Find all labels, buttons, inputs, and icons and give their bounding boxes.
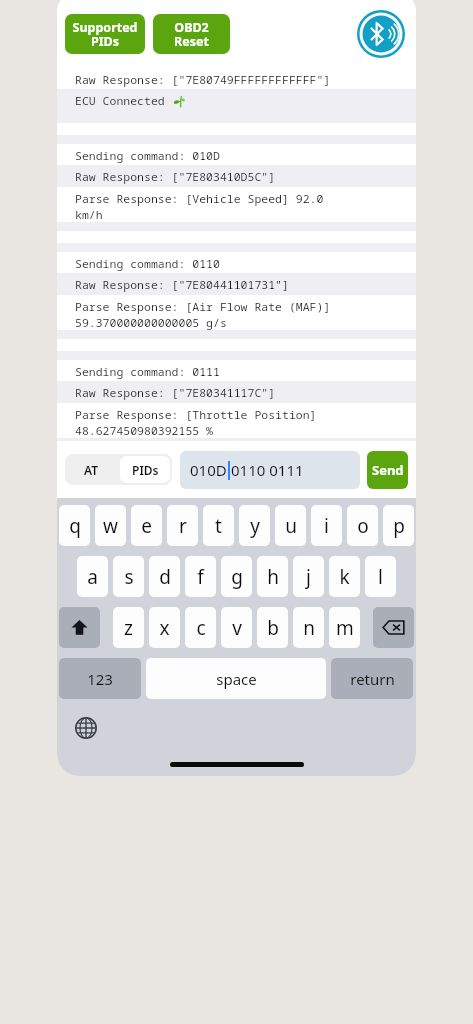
button[interactable]: 010D xyxy=(180,451,360,489)
staticText: k xyxy=(339,564,350,590)
staticText: y xyxy=(250,513,260,539)
button[interactable]: a xyxy=(77,556,108,597)
button[interactable]: Parse Response: [Vehicle Speed] 92.0 km/… xyxy=(57,187,416,222)
staticText: Sending command: 0110 xyxy=(75,256,220,272)
staticText: c xyxy=(196,615,206,641)
staticText: Sending command: 0111 xyxy=(75,364,220,380)
button[interactable]: l xyxy=(365,556,396,597)
staticText: o xyxy=(357,513,369,539)
button[interactable]: return xyxy=(331,658,413,699)
button[interactable]: 123 xyxy=(59,658,141,699)
staticText: q xyxy=(69,513,81,539)
button[interactable]: Parse Response: [Throttle Position] 48.6… xyxy=(57,403,416,438)
button[interactable]: Raw Response: ["7E803410D5C"] xyxy=(57,165,416,187)
staticText: n xyxy=(303,615,315,641)
staticText: Raw Response: ["7E80441101731"] xyxy=(75,277,289,293)
button[interactable]: i xyxy=(311,505,342,546)
button[interactable]: y xyxy=(239,505,270,546)
button[interactable]: b xyxy=(257,607,288,648)
staticText: Raw Response: ["7E80749FFFFFFFFFFFF"] xyxy=(75,72,331,88)
button[interactable]: Bluetooth connection xyxy=(356,9,406,59)
button[interactable]: Sending command: 010D xyxy=(57,144,416,165)
staticText: r xyxy=(179,513,187,539)
staticText: b xyxy=(267,615,279,641)
button[interactable]: Change keyboard language xyxy=(71,713,101,743)
button[interactable]: Sending command: 0110 xyxy=(57,252,416,273)
staticText: space xyxy=(216,669,257,689)
button[interactable]: Raw Response: ["7E80341117C"] xyxy=(57,381,416,403)
staticText: i xyxy=(324,513,329,539)
button[interactable]: Raw Response: ["7E80749FFFFFFFFFFFF"] xyxy=(57,68,416,89)
button[interactable]: Supported PIDs xyxy=(65,14,145,54)
button[interactable]: s xyxy=(113,556,144,597)
staticText: e xyxy=(141,513,152,539)
button[interactable]: Backspace xyxy=(373,607,414,648)
button[interactable]: o xyxy=(347,505,378,546)
staticText: d xyxy=(159,564,171,590)
staticText: Supported PIDs xyxy=(72,19,138,50)
staticText: z xyxy=(124,615,133,641)
staticText: u xyxy=(285,513,297,539)
button[interactable]: m xyxy=(329,607,360,648)
button[interactable]: z xyxy=(113,607,144,648)
staticText: a xyxy=(87,564,98,590)
staticText: w xyxy=(103,513,118,539)
staticText: j xyxy=(306,564,311,590)
staticText: h xyxy=(267,564,279,590)
button[interactable]: g xyxy=(221,556,252,597)
button[interactable]: Parse Response: [Air Flow Rate (MAF)] 59… xyxy=(57,295,416,330)
staticText: OBD2 Reset xyxy=(174,19,209,50)
staticText: 123 xyxy=(87,669,113,689)
button[interactable]: OBD2 Reset xyxy=(153,14,230,54)
staticText: 010D xyxy=(190,460,227,480)
button[interactable]: Sending command: 0111 xyxy=(57,360,416,381)
staticText: Parse Response: [Vehicle Speed] 92.0 km/… xyxy=(75,191,324,222)
button[interactable]: k xyxy=(329,556,360,597)
button[interactable]: u xyxy=(275,505,306,546)
button[interactable]: c xyxy=(185,607,216,648)
button[interactable]: e xyxy=(131,505,162,546)
staticText: l xyxy=(378,564,383,590)
staticText: t xyxy=(215,513,222,539)
button[interactable]: Send xyxy=(367,451,408,489)
button[interactable]: Raw Response: ["7E80441101731"] xyxy=(57,273,416,295)
button[interactable]: j xyxy=(293,556,324,597)
button[interactable]: PIDs xyxy=(120,456,170,483)
staticText: v xyxy=(232,615,242,641)
button[interactable]: AT xyxy=(65,454,118,485)
button[interactable]: n xyxy=(293,607,324,648)
staticText: Parse Response: [Throttle Position] 48.6… xyxy=(75,407,317,438)
staticText: m xyxy=(336,615,354,641)
staticText: f xyxy=(197,564,204,590)
button[interactable]: d xyxy=(149,556,180,597)
staticText: Sending command: 010D xyxy=(75,148,220,164)
button[interactable]: v xyxy=(221,607,252,648)
button[interactable]: x xyxy=(149,607,180,648)
staticText: AT xyxy=(84,462,99,478)
staticText: Send xyxy=(372,461,404,479)
button[interactable]: p xyxy=(383,505,414,546)
button[interactable]: f xyxy=(185,556,216,597)
staticText: return xyxy=(350,669,395,689)
button[interactable]: space xyxy=(146,658,326,699)
button[interactable]: ECU Connected xyxy=(57,89,416,123)
staticText: Parse Response: [Air Flow Rate (MAF)] 59… xyxy=(75,299,331,330)
button[interactable]: r xyxy=(167,505,198,546)
button[interactable]: w xyxy=(95,505,126,546)
button[interactable]: q xyxy=(59,505,90,546)
staticText: PIDs xyxy=(132,462,159,478)
staticText: Raw Response: ["7E80341117C"] xyxy=(75,385,276,401)
button[interactable]: t xyxy=(203,505,234,546)
staticText: x xyxy=(159,615,170,641)
button[interactable]: h xyxy=(257,556,288,597)
button[interactable]: Shift xyxy=(59,607,100,648)
